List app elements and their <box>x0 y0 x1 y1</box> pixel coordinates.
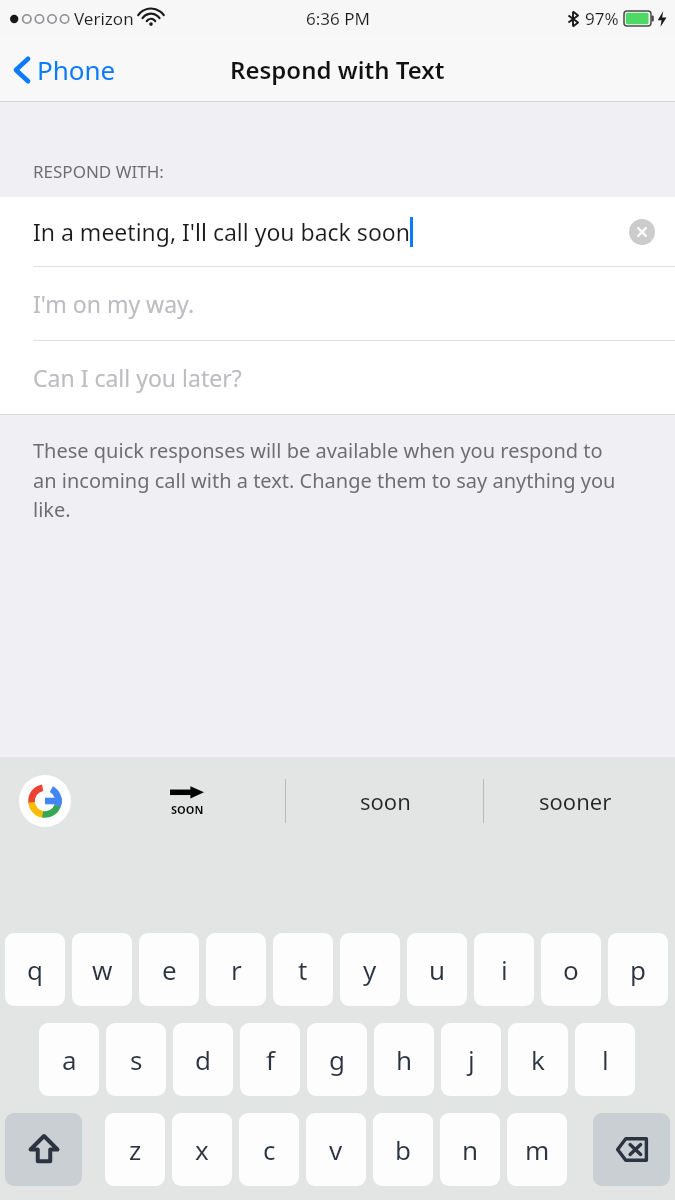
button[interactable]: z <box>105 1113 165 1186</box>
staticText: n <box>462 1132 479 1167</box>
staticText: SOON <box>171 802 204 817</box>
button[interactable]: p <box>608 933 668 1006</box>
staticText: In a meeting, I'll call you back soon <box>33 216 410 247</box>
staticText: y <box>363 952 377 987</box>
staticText: t <box>298 952 308 987</box>
button[interactable]: u <box>407 933 467 1006</box>
staticText: d <box>195 1042 211 1077</box>
button[interactable]: a <box>39 1023 99 1096</box>
staticText: Phone <box>37 52 116 87</box>
button[interactable]: I'm on my way. <box>0 267 675 340</box>
button[interactable]: Google <box>19 775 71 827</box>
button[interactable]: j <box>441 1023 501 1096</box>
staticText: r <box>231 952 242 987</box>
staticText: Respond with Text <box>230 53 445 86</box>
staticText: sooner <box>539 786 612 816</box>
staticText: u <box>429 952 446 987</box>
button[interactable]: r <box>206 933 266 1006</box>
staticText: soon <box>360 786 411 816</box>
button[interactable]: h <box>374 1023 434 1096</box>
staticText: f <box>266 1042 275 1077</box>
staticText: x <box>195 1132 209 1167</box>
button[interactable]: m <box>507 1113 567 1186</box>
button[interactable]: g <box>307 1023 367 1096</box>
button[interactable]: Back to Phone <box>14 48 126 91</box>
staticText: a <box>62 1042 77 1077</box>
button[interactable]: c <box>239 1113 299 1186</box>
button[interactable]: b <box>373 1113 433 1186</box>
staticText: 6:36 PM <box>306 7 370 30</box>
button[interactable]: f <box>240 1023 300 1096</box>
button[interactable]: e <box>139 933 199 1006</box>
staticText: I'm on my way. <box>33 288 195 319</box>
button[interactable]: soon <box>290 766 480 836</box>
button[interactable]: x <box>172 1113 232 1186</box>
staticText: q <box>27 952 43 987</box>
button[interactable]: sooner <box>480 766 670 836</box>
staticText: RESPOND WITH: <box>33 160 164 183</box>
staticText: e <box>162 952 177 987</box>
button[interactable]: t <box>273 933 333 1006</box>
button[interactable]: Can I call you later? <box>0 341 675 414</box>
button[interactable]: In a meeting, I'll call you back soon <box>0 197 675 266</box>
button[interactable]: v <box>306 1113 366 1186</box>
staticText: w <box>92 952 113 987</box>
staticText: h <box>396 1042 413 1077</box>
button[interactable]: w <box>72 933 132 1006</box>
button[interactable]: d <box>173 1023 233 1096</box>
staticText: v <box>329 1132 343 1167</box>
button[interactable]: l <box>575 1023 635 1096</box>
staticText: k <box>531 1042 545 1077</box>
staticText: Can I call you later? <box>33 362 242 393</box>
staticText: s <box>130 1042 143 1077</box>
staticText: g <box>329 1042 345 1077</box>
staticText: z <box>129 1132 142 1167</box>
button[interactable]: Emoji suggestion soon <box>148 771 226 831</box>
button[interactable]: n <box>440 1113 500 1186</box>
staticText: j <box>468 1042 475 1077</box>
button[interactable]: k <box>508 1023 568 1096</box>
button[interactable]: Shift <box>5 1113 82 1186</box>
staticText: o <box>563 952 579 987</box>
button[interactable]: s <box>106 1023 166 1096</box>
button[interactable]: Clear text <box>629 219 655 245</box>
staticText: 97% <box>585 7 619 30</box>
staticText: l <box>602 1042 609 1077</box>
button[interactable]: y <box>340 933 400 1006</box>
staticText: c <box>263 1132 276 1167</box>
button[interactable]: o <box>541 933 601 1006</box>
button[interactable]: Backspace <box>593 1113 670 1186</box>
button[interactable]: q <box>5 933 65 1006</box>
staticText: These quick responses will be available … <box>33 437 630 523</box>
staticText: m <box>525 1132 550 1167</box>
button[interactable]: i <box>474 933 534 1006</box>
staticText: b <box>395 1132 411 1167</box>
staticText: i <box>501 952 508 987</box>
staticText: p <box>630 952 646 987</box>
staticText: Verizon <box>74 7 134 30</box>
